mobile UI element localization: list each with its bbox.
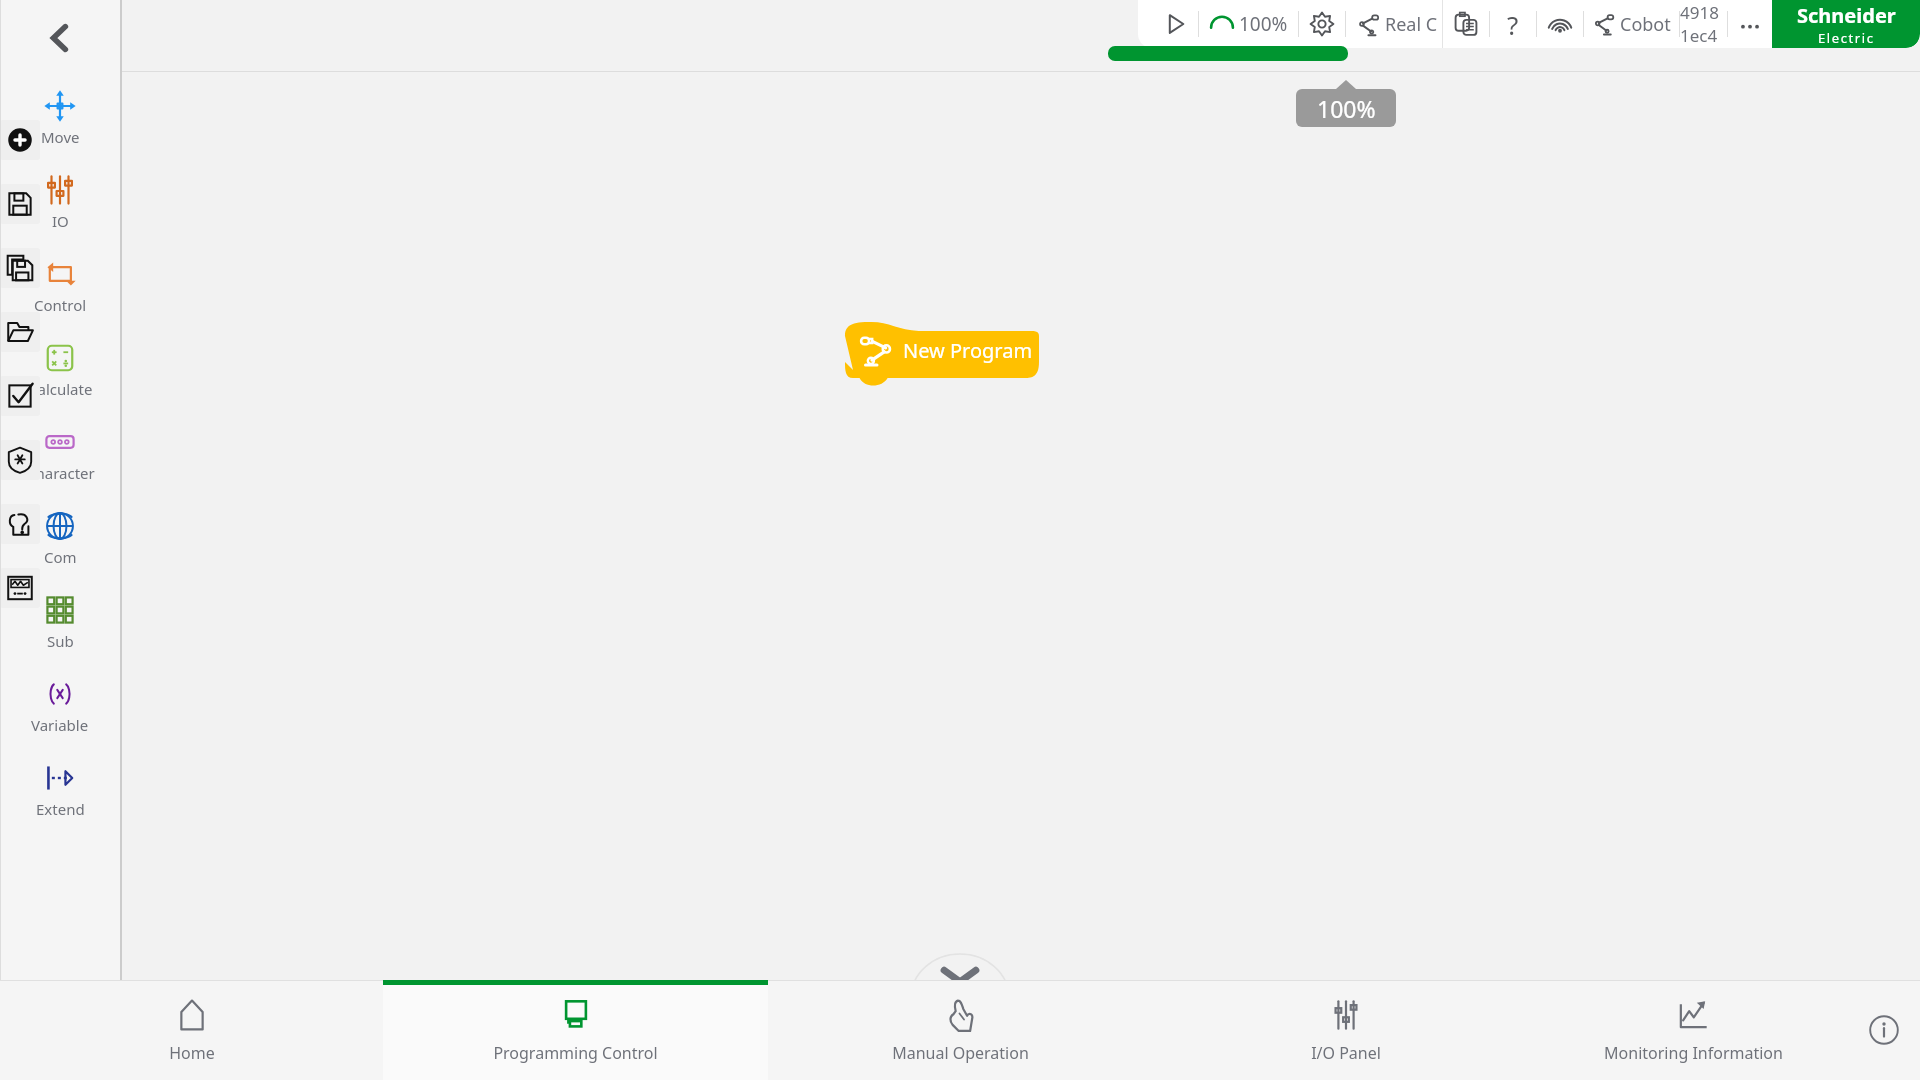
staticText: 100%	[1239, 11, 1288, 37]
button[interactable]: Run	[1152, 0, 1198, 48]
button[interactable]: Com	[0, 496, 120, 580]
staticText: Schneider	[1797, 2, 1896, 29]
button[interactable]: New Program	[845, 322, 1039, 378]
button[interactable]: Back	[28, 6, 92, 70]
button[interactable]: Speed 100 percent	[1108, 46, 1348, 61]
button[interactable]: Save	[0, 184, 40, 224]
button[interactable]: Collapse	[911, 954, 1009, 998]
staticText: Calculate	[28, 379, 93, 399]
button[interactable]: Safety	[0, 440, 40, 480]
button[interactable]: Open	[0, 312, 40, 352]
staticText: Move	[41, 127, 80, 147]
staticText: Real C	[1385, 12, 1438, 37]
staticText: Variable	[31, 715, 89, 735]
button[interactable]: More	[1728, 0, 1772, 48]
staticText: Electric	[1818, 29, 1875, 47]
button[interactable]: Monitor	[0, 568, 40, 608]
button[interactable]: 100%	[1199, 0, 1298, 48]
button[interactable]: Check	[0, 376, 40, 416]
button[interactable]: Teach	[0, 504, 40, 544]
button[interactable]: Control	[0, 244, 120, 328]
button[interactable]: Manual Operation	[768, 980, 1153, 1080]
staticText: 100%	[1317, 93, 1376, 124]
button[interactable]: Character	[0, 412, 120, 496]
staticText: Com	[44, 547, 77, 567]
button[interactable]: Sub	[0, 580, 120, 664]
staticText: Monitoring Information	[1604, 1042, 1783, 1064]
button[interactable]: Network	[1537, 0, 1583, 48]
button[interactable]: Variable	[0, 664, 120, 748]
staticText: 1ec4	[1680, 24, 1718, 47]
button[interactable]: Info	[1848, 980, 1920, 1080]
staticText: 4918	[1680, 1, 1719, 24]
button[interactable]: Real C	[1346, 0, 1442, 48]
button[interactable]: Settings	[1299, 0, 1345, 48]
staticText: ?	[1507, 7, 1519, 42]
staticText: Character	[26, 463, 95, 483]
button[interactable]: 4918	[1680, 0, 1719, 48]
staticText: IO	[52, 211, 69, 231]
staticText: I/O Panel	[1311, 1042, 1381, 1064]
button[interactable]: Home	[0, 980, 383, 1080]
staticText: Home	[169, 1042, 215, 1064]
staticText: Programming Control	[493, 1042, 658, 1064]
staticText: Manual Operation	[892, 1042, 1029, 1064]
button[interactable]: Move	[0, 76, 120, 160]
staticText: Extend	[36, 799, 85, 819]
button[interactable]: Programming Control	[383, 980, 768, 1080]
button[interactable]: Schneider Electric	[1772, 0, 1920, 48]
staticText: New Program	[903, 337, 1033, 364]
staticText: Control	[34, 295, 87, 315]
button[interactable]: I/O Panel	[1153, 980, 1538, 1080]
button[interactable]: ?	[1490, 0, 1536, 48]
staticText: Cobot	[1620, 12, 1671, 37]
button[interactable]: Calculate	[0, 328, 120, 412]
staticText: Sub	[47, 631, 74, 651]
button[interactable]: Clipboard	[1443, 0, 1489, 48]
button[interactable]: Save As	[0, 248, 40, 288]
button[interactable]: IO	[0, 160, 120, 244]
button[interactable]: Add	[0, 120, 40, 160]
button[interactable]: Extend	[0, 748, 120, 832]
button[interactable]: Monitoring Information	[1538, 980, 1848, 1080]
button[interactable]: Cobot	[1584, 0, 1679, 48]
